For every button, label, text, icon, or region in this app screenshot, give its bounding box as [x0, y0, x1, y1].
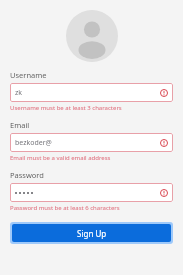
- staticText: Sign Up: [77, 228, 107, 239]
- other: Invalid input: [160, 139, 168, 147]
- staticText: zk: [15, 88, 23, 98]
- staticText: Password: [10, 170, 44, 180]
- staticText: Password must be at least 6 characters: [10, 204, 120, 212]
- button[interactable]: Sign Up: [12, 224, 171, 242]
- staticText: Email: [10, 120, 30, 130]
- button[interactable]: Invalid input: [10, 183, 173, 202]
- button[interactable]: zk: [10, 83, 173, 102]
- button[interactable]: bezkoder@: [10, 133, 173, 152]
- other: Invalid input: [160, 189, 168, 197]
- staticText: Email must be a valid email address: [10, 154, 111, 162]
- other: Invalid input: [160, 89, 168, 97]
- staticText: Username must be at least 3 characters: [10, 104, 122, 112]
- staticText: bezkoder@: [15, 138, 52, 148]
- staticText: Username: [10, 70, 47, 80]
